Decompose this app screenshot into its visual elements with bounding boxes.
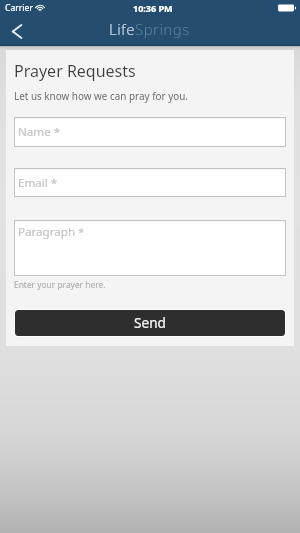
staticText: Send: [134, 313, 166, 332]
staticText: Email *: [18, 175, 58, 191]
button[interactable]: Back: [0, 16, 34, 46]
staticText: Name *: [18, 124, 61, 140]
button[interactable]: Name *: [14, 117, 286, 147]
staticText: Paragraph *: [18, 224, 85, 240]
staticText: Springs: [135, 19, 190, 39]
staticText: Life: [109, 19, 135, 39]
staticText: Prayer Requests: [14, 60, 136, 82]
staticText: 10:36 PM: [133, 2, 173, 14]
staticText: Enter your prayer here.: [14, 279, 106, 290]
staticText: Carrier: [5, 2, 33, 14]
button[interactable]: Send: [15, 310, 285, 336]
staticText: Let us know how we can pray for you.: [14, 89, 188, 102]
button[interactable]: Email *: [14, 168, 286, 197]
button[interactable]: Paragraph *: [14, 220, 286, 276]
